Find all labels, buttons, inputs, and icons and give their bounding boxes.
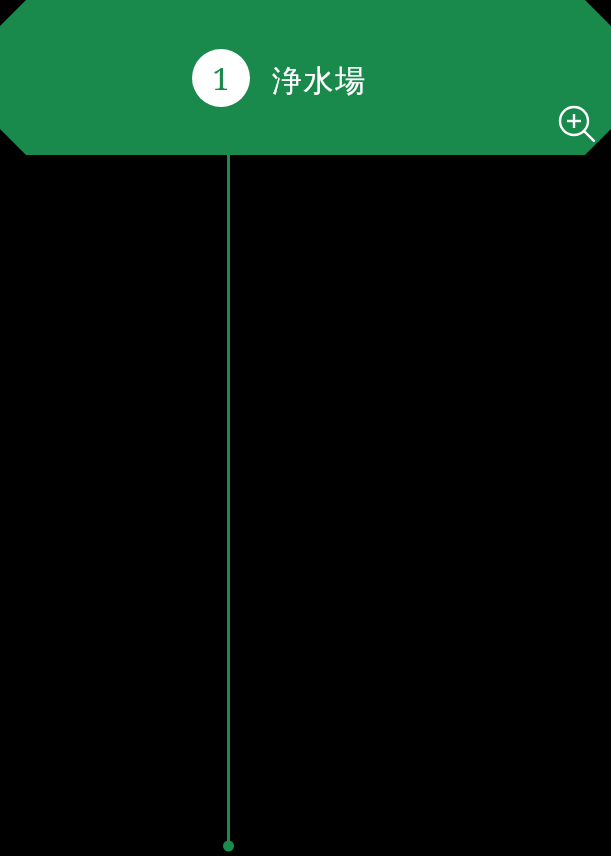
button[interactable]: Zoom in (548, 97, 596, 145)
staticText: 浄水場 (272, 62, 367, 100)
staticText: 1 (212, 57, 230, 99)
button[interactable]: 1 (0, 0, 611, 155)
